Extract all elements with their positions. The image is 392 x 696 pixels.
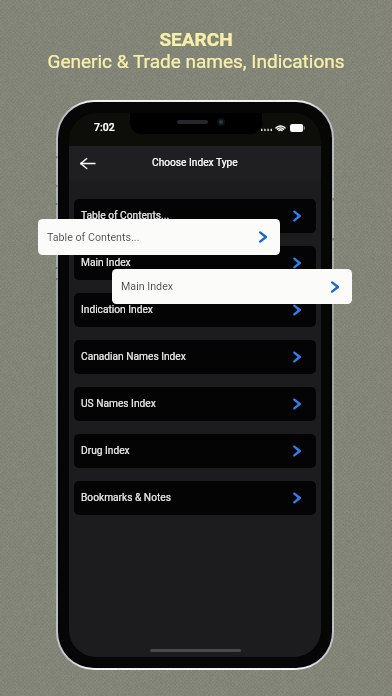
button[interactable]: US Names Index xyxy=(74,387,316,421)
staticText: Table of Contents... xyxy=(81,210,170,222)
staticText: Main Index xyxy=(81,257,131,269)
button[interactable]: Drug Index xyxy=(74,434,316,468)
staticText: Choose Index Type xyxy=(152,157,238,169)
button[interactable]: Main Index xyxy=(112,269,352,304)
staticText: Main Index xyxy=(121,280,174,293)
staticText: Canadian Names Index xyxy=(81,351,186,363)
staticText: SEARCH xyxy=(0,28,392,50)
button[interactable]: Main Index xyxy=(74,246,316,280)
button[interactable]: Table of Contents... xyxy=(74,199,316,233)
button[interactable]: Canadian Names Index xyxy=(74,340,316,374)
staticText: Drug Index xyxy=(81,445,130,457)
staticText: Generic & Trade names, Indications xyxy=(0,50,392,72)
button[interactable]: Table of Contents... xyxy=(38,219,280,255)
staticText: Indication Index xyxy=(81,304,153,316)
button[interactable]: Bookmarks & Notes xyxy=(74,481,316,515)
button[interactable]: Back xyxy=(73,149,101,177)
staticText: 7:02 xyxy=(94,121,115,133)
staticText: Table of Contents... xyxy=(47,231,140,244)
staticText: Bookmarks & Notes xyxy=(81,492,171,504)
button[interactable]: Indication Index xyxy=(74,293,316,327)
staticText: US Names Index xyxy=(81,398,156,410)
